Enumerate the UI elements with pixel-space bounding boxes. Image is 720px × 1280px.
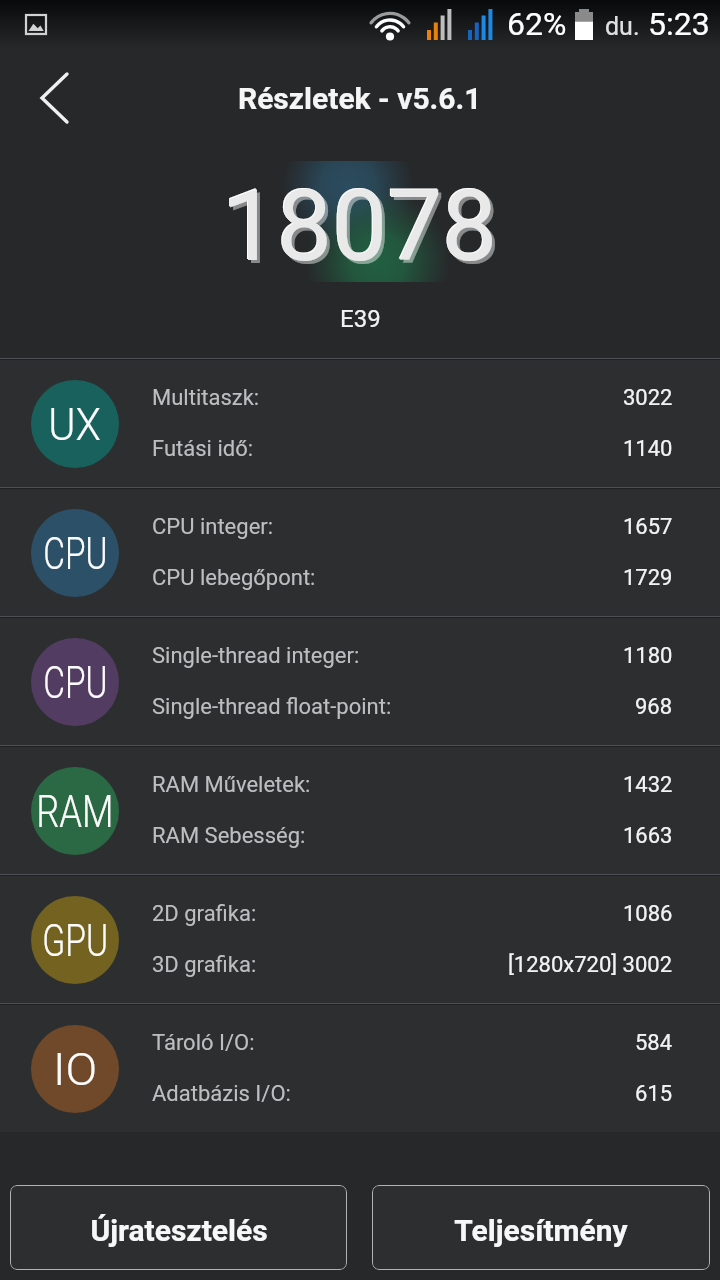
staticText: CPU integer: (152, 514, 274, 540)
staticText: 3022 (623, 385, 673, 411)
staticText: 1657 (623, 514, 673, 540)
staticText: 18078 (221, 168, 497, 283)
staticText: Multitaszk: (152, 385, 260, 411)
staticText: CPU (43, 656, 108, 709)
staticText: Futási idő: (152, 436, 254, 462)
staticText: Adatbázis I/O: (152, 1081, 291, 1107)
staticText: 1180 (623, 643, 673, 669)
staticText: 1140 (623, 436, 673, 462)
staticText: 1432 (623, 772, 673, 798)
staticText: IO (53, 1043, 98, 1096)
staticText: 1086 (623, 901, 673, 927)
staticText: 968 (635, 694, 673, 720)
staticText: UX (48, 398, 102, 451)
staticText: Teljesítmény (454, 1213, 628, 1248)
staticText: 18078 (222, 169, 498, 284)
staticText: 615 (635, 1081, 673, 1107)
staticText: 1729 (623, 565, 673, 591)
staticText: RAM (36, 785, 114, 838)
staticText: Tároló I/O: (152, 1030, 255, 1056)
button[interactable]: Újratesztelés (10, 1185, 347, 1270)
button[interactable]: CPU (0, 618, 720, 745)
staticText: 2D grafika: (152, 901, 257, 927)
staticText: [1280x720] 3002 (508, 952, 673, 978)
staticText: RAM Műveletek: (152, 772, 311, 798)
button[interactable]: RAM (0, 747, 720, 874)
staticText: RAM Sebesség: (152, 823, 306, 849)
button[interactable]: CPU (0, 489, 720, 616)
button[interactable]: Teljesítmény (372, 1185, 710, 1270)
button[interactable]: Back (0, 48, 100, 147)
staticText: Single-thread float-point: (152, 694, 392, 720)
button[interactable]: GPU (0, 876, 720, 1003)
staticText: 62% (507, 5, 567, 43)
button[interactable]: IO (0, 1005, 720, 1132)
staticText: Részletek - v5.6.1 (238, 81, 482, 116)
staticText: 3D grafika: (152, 952, 257, 978)
staticText: GPU (42, 914, 109, 967)
staticText: Single-thread integer: (152, 643, 360, 669)
staticText: CPU (43, 527, 108, 580)
staticText: 1663 (623, 823, 673, 849)
staticText: E39 (340, 305, 381, 333)
staticText: du. (605, 12, 640, 41)
staticText: 5:23 (648, 5, 710, 43)
staticText: 18078 (225, 172, 501, 287)
staticText: 584 (635, 1030, 673, 1056)
staticText: Újratesztelés (90, 1213, 268, 1248)
button[interactable]: UX (0, 360, 720, 487)
staticText: CPU lebegőpont: (152, 565, 316, 591)
